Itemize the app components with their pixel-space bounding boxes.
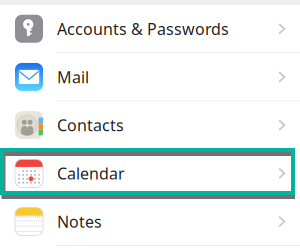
button[interactable]: Notes <box>0 198 300 245</box>
staticText: Calendar <box>57 163 125 184</box>
button[interactable]: Mail <box>0 53 300 101</box>
button[interactable]: Contacts <box>0 101 300 149</box>
staticText: Notes <box>57 211 102 232</box>
button[interactable]: Accounts & Passwords <box>0 5 300 52</box>
staticText: Mail <box>57 66 89 87</box>
staticText: Contacts <box>57 114 124 136</box>
button[interactable]: Calendar <box>0 150 300 197</box>
staticText: Accounts & Passwords <box>57 18 229 39</box>
